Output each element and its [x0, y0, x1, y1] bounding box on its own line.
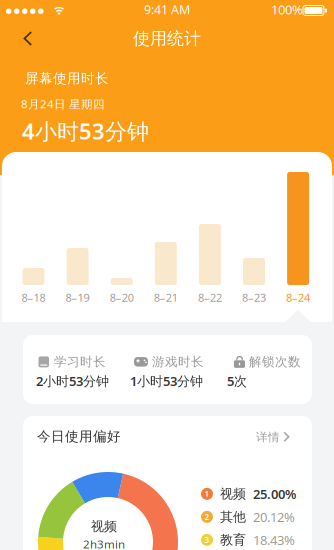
staticText: 8月24日 星期四: [21, 96, 105, 112]
button[interactable]: 详情: [256, 430, 290, 444]
staticText: 教育: [220, 532, 246, 548]
staticText: 2h3min: [83, 536, 125, 550]
staticText: 8–19: [66, 290, 90, 305]
staticText: 8–21: [154, 290, 178, 305]
staticText: 4小时53分钟: [22, 116, 149, 146]
staticText: 解锁次数: [249, 354, 301, 370]
staticText: 2: [204, 511, 209, 522]
staticText: 9:41 AM: [144, 1, 190, 18]
staticText: 8–24: [286, 290, 310, 305]
staticText: 其他: [220, 509, 246, 525]
staticText: 8–18: [21, 290, 45, 305]
staticText: 使用统计: [133, 28, 201, 49]
staticText: 8–23: [242, 290, 266, 305]
staticText: 8–22: [198, 290, 222, 305]
staticText: 视频: [91, 518, 117, 535]
button[interactable]: 8–19: [60, 172, 96, 312]
staticText: 25.00%: [253, 485, 296, 503]
staticText: 5次: [227, 372, 247, 390]
staticText: 2小时53分钟: [36, 372, 109, 390]
button[interactable]: 8–18: [15, 172, 51, 312]
button[interactable]: 8–20: [104, 172, 140, 312]
staticText: 1小时53分钟: [130, 372, 203, 390]
staticText: 详情: [256, 430, 280, 444]
staticText: 游戏时长: [152, 354, 204, 370]
staticText: 视频: [220, 486, 246, 502]
button[interactable]: 8–21: [148, 172, 184, 312]
staticText: 20.12%: [253, 508, 295, 526]
staticText: 1: [204, 488, 209, 499]
button[interactable]: 8–23: [236, 172, 272, 312]
staticText: 今日使用偏好: [37, 428, 121, 445]
staticText: 100%: [271, 0, 303, 18]
button[interactable]: 8–22: [192, 172, 228, 312]
staticText: 8–20: [110, 290, 134, 305]
button[interactable]: 8–24: [280, 172, 316, 312]
staticText: 3: [204, 534, 209, 545]
staticText: 学习时长: [54, 354, 106, 370]
staticText: 屏幕使用时长: [25, 70, 109, 87]
staticText: 18.43%: [253, 531, 295, 549]
button[interactable]: Back: [16, 30, 38, 47]
